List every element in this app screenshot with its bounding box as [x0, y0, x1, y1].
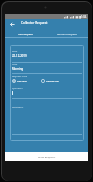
button[interactable]: SEND REQUEST: [5, 152, 88, 161]
button[interactable]: PENDING REQUEST: [46, 31, 88, 37]
staticText: 1:04: [81, 15, 87, 19]
staticText: DATE: [12, 50, 18, 53]
staticText: REQUEST TYPE: [12, 75, 28, 78]
staticText: SEND REQUEST: [38, 155, 56, 158]
button[interactable]: NEW REQUEST: [5, 31, 46, 37]
staticText: 22-12-2019: [12, 54, 27, 58]
staticText: Free Gifts: [17, 80, 27, 83]
staticText: TIME: [12, 63, 18, 66]
staticText: NEW REQUEST: [18, 33, 33, 36]
button[interactable]: Free Gifts: [12, 79, 27, 83]
staticText: QUANTITY: [12, 87, 23, 90]
staticText: Morning: [12, 67, 24, 71]
button[interactable]: Back: [8, 20, 17, 29]
button[interactable]: Surprise Gift: [41, 79, 59, 83]
staticText: Surprise Gift: [46, 80, 59, 83]
staticText: PENDING REQUEST: [57, 33, 77, 36]
staticText: Collector Request: [21, 21, 48, 25]
staticText: COMMENT: [12, 106, 24, 109]
